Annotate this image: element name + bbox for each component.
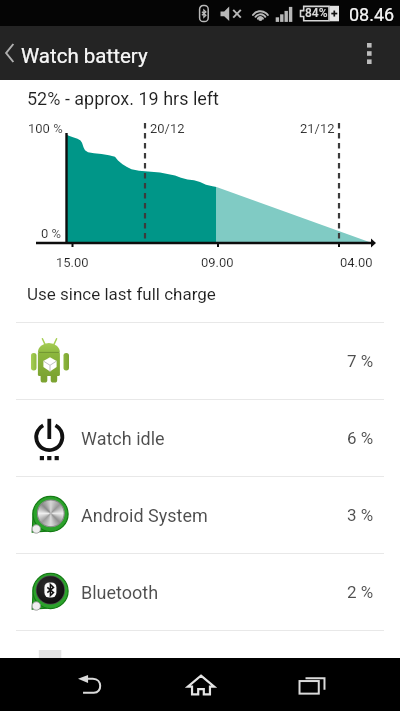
staticText: 3 % <box>347 505 374 525</box>
staticText: 100 % <box>28 121 63 136</box>
button[interactable]: 7 % <box>0 323 400 399</box>
staticText: Watch idle <box>81 428 165 449</box>
button[interactable]: More options <box>352 26 386 80</box>
button[interactable]: Watch idle <box>0 400 400 476</box>
staticText: 7 % <box>347 351 374 371</box>
staticText: 08.46 <box>349 4 395 25</box>
staticText: Use since last full charge <box>27 284 216 304</box>
staticText: 04.00 <box>340 255 373 270</box>
staticText: 20/12 <box>150 121 185 136</box>
button[interactable]: Android System <box>0 477 400 553</box>
staticText: 0 % <box>41 226 62 241</box>
button[interactable] <box>0 631 400 659</box>
button[interactable]: Back <box>55 658 124 711</box>
staticText: Bluetooth <box>81 582 159 603</box>
staticText: 09.00 <box>201 255 234 270</box>
staticText: Watch battery <box>21 44 148 68</box>
staticText: 6 % <box>347 428 374 448</box>
button[interactable]: Recents <box>277 658 346 711</box>
staticText: Android System <box>81 505 208 526</box>
button[interactable]: Bluetooth <box>0 554 400 630</box>
button[interactable]: Watch battery <box>0 41 154 65</box>
staticText: 21/12 <box>300 121 335 136</box>
staticText: 2 % <box>347 582 374 602</box>
button[interactable]: Home <box>166 658 235 711</box>
staticText: 15.00 <box>56 255 89 270</box>
staticText: 52% - approx. 19 hrs left <box>27 88 220 109</box>
staticText: 84% <box>305 6 328 20</box>
